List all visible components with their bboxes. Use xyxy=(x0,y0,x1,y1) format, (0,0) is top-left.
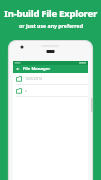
staticText: or just use any preferred xyxy=(19,22,83,29)
button[interactable]: 12/6/2013 xyxy=(13,73,88,84)
staticText: In-build File Explorer xyxy=(4,7,97,20)
button[interactable]: c xyxy=(13,85,88,96)
staticText: 12/6/2013 xyxy=(25,76,43,81)
staticText: File Manager xyxy=(23,66,51,72)
button[interactable]: Back xyxy=(15,66,21,72)
staticText: c xyxy=(25,88,27,93)
